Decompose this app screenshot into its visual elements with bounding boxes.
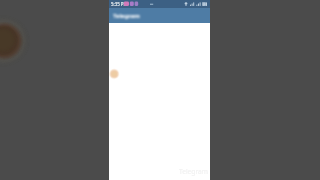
button[interactable]: Telegram xyxy=(109,8,210,23)
staticText: 5:35 PM xyxy=(111,1,128,7)
staticText: Telegram xyxy=(179,167,208,176)
staticText: Telegram xyxy=(113,12,140,20)
